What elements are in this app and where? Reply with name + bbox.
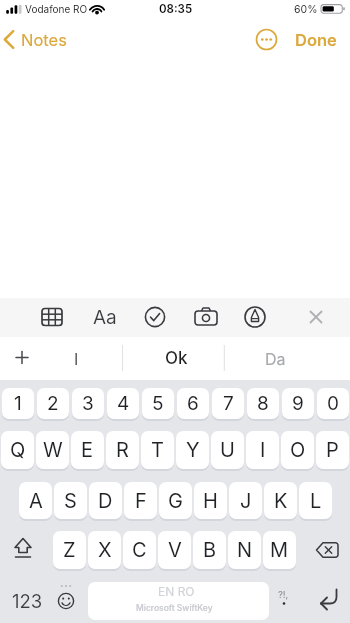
button[interactable] [226,341,325,376]
button[interactable] [300,302,332,333]
button[interactable] [290,24,342,55]
button[interactable] [36,302,68,333]
button[interactable] [139,302,171,333]
button[interactable] [52,582,82,620]
staticText: G [168,489,183,513]
button[interactable]: 0 [317,388,349,419]
button[interactable]: 9 [282,388,314,419]
button[interactable]: H [194,482,227,519]
staticText: 9 [292,392,304,415]
button[interactable]: M [263,531,296,569]
staticText: 5 [152,392,164,415]
staticText: EN RO [158,584,195,599]
staticText: V [168,538,182,562]
staticText: R [116,438,129,462]
button[interactable]: 5 [142,388,174,419]
button[interactable] [0,22,80,56]
staticText: 6 [187,392,199,415]
staticText: P [326,438,339,462]
button[interactable]: W [36,431,69,469]
staticText: C [132,538,147,562]
button[interactable]: D [89,482,122,519]
button[interactable] [124,341,223,376]
button[interactable]: 7 [212,388,244,419]
button[interactable]: J [229,482,262,519]
button[interactable] [36,341,122,376]
button[interactable] [306,582,348,620]
staticText: H [203,489,218,513]
staticText: Da [265,349,286,368]
button[interactable]: F [124,482,157,519]
button[interactable] [190,302,222,333]
button[interactable] [4,341,40,376]
button[interactable]: T [141,431,174,469]
staticText: 0 [327,392,339,415]
staticText: K [274,489,288,513]
staticText: Aa [93,306,117,329]
staticText: N [237,538,253,562]
button[interactable]: N [228,531,261,569]
button[interactable]: X [88,531,121,569]
button[interactable]: 1 [2,388,34,419]
staticText: 3 [82,392,94,415]
staticText: J [240,489,252,513]
staticText: W [43,438,63,462]
button[interactable]: P [316,431,349,469]
staticText: E [81,438,94,462]
staticText: ?!, [278,589,289,600]
button[interactable] [6,582,50,620]
button[interactable]: Y [176,431,209,469]
button[interactable]: S [54,482,87,519]
button[interactable] [2,24,77,55]
button[interactable]: B [193,531,226,569]
button[interactable]: L [299,482,332,519]
button[interactable]: 2 [37,388,69,419]
button[interactable]: G [159,482,192,519]
staticText: 60% [294,3,318,16]
staticText: 8 [257,392,269,415]
staticText: O [290,438,306,462]
button[interactable]: Q [1,431,34,469]
staticText: F [135,489,147,513]
staticText: I [74,349,79,368]
staticText: U [220,438,235,462]
staticText: Done [295,30,337,50]
staticText: Vodafone RO [25,3,88,15]
button[interactable] [239,302,271,333]
button[interactable]: Z [53,531,86,569]
staticText: 1 [14,392,22,415]
button[interactable] [250,24,283,55]
button[interactable] [89,302,121,333]
button[interactable]: U [211,431,244,469]
button[interactable] [88,582,269,620]
staticText: T [151,438,164,462]
button[interactable]: C [123,531,156,569]
button[interactable] [305,531,347,569]
button[interactable]: V [158,531,191,569]
staticText: A [29,489,43,513]
staticText: Microsoft SwiftKey [136,603,213,613]
staticText: S [64,489,77,513]
staticText: Ok [165,348,188,369]
button[interactable]: R [106,431,139,469]
button[interactable]: 6 [177,388,209,419]
button[interactable] [271,582,299,620]
button[interactable]: 8 [247,388,279,419]
button[interactable]: A [19,482,52,519]
staticText: I [260,438,266,462]
button[interactable]: 3 [72,388,104,419]
button[interactable] [4,531,46,569]
staticText: Y [186,438,200,462]
staticText: 4 [117,392,130,415]
button[interactable]: E [71,431,104,469]
button[interactable]: I [246,431,279,469]
staticText: 123 [12,590,43,612]
staticText: Z [63,538,76,562]
button[interactable]: 4 [107,388,139,419]
staticText: L [310,489,322,513]
button[interactable]: K [264,482,297,519]
staticText: 08:35 [159,2,193,16]
staticText: 2 [47,392,59,415]
button[interactable]: O [281,431,314,469]
staticText: B [203,538,217,562]
